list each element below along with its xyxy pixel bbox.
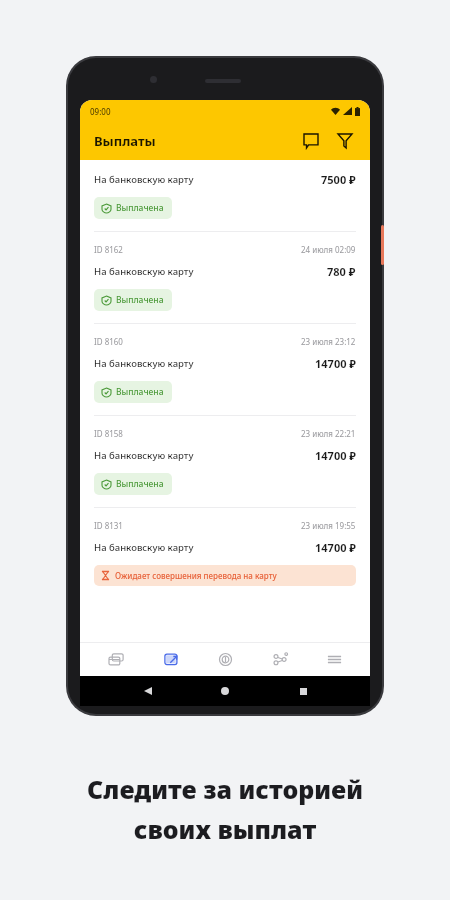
staticText: 14700 ₽ (315, 356, 356, 371)
staticText: 23 июля 22:21 (301, 428, 356, 439)
staticText: ID 8160 (94, 336, 123, 347)
staticText: 24 июля 02:09 (301, 244, 356, 255)
button[interactable]: Payouts (151, 642, 191, 676)
button[interactable]: Support (205, 642, 245, 676)
button[interactable]: Выплачена (94, 473, 172, 495)
button[interactable]: ID 8158 (80, 416, 370, 507)
button[interactable]: Back (138, 681, 158, 701)
button[interactable]: Выплачена (94, 289, 172, 311)
staticText: Следите за историей (0, 772, 450, 806)
staticText: 7500 ₽ (321, 172, 356, 187)
staticText: своих выплат (0, 812, 450, 846)
staticText: Выплачена (116, 202, 164, 214)
staticText: 14700 ₽ (315, 540, 356, 555)
staticText: 780 ₽ (327, 264, 356, 279)
button[interactable]: Home (215, 681, 235, 701)
staticText: На банковскую карту (94, 265, 194, 278)
button[interactable]: Referral (260, 642, 300, 676)
staticText: Выплачена (116, 386, 164, 398)
staticText: На банковскую карту (94, 173, 194, 186)
button[interactable]: ID 8131 (80, 508, 370, 598)
button[interactable]: Orders (96, 642, 136, 676)
button[interactable]: На банковскую карту (80, 160, 370, 231)
button[interactable]: Ожидает совершения перевода на карту (94, 565, 356, 586)
button[interactable]: ID 8162 (80, 232, 370, 323)
staticText: Выплаты (94, 132, 156, 150)
staticText: Ожидает совершения перевода на карту (115, 570, 277, 581)
staticText: 14700 ₽ (315, 448, 356, 463)
button[interactable]: Menu (314, 642, 354, 676)
button[interactable]: Chat (298, 128, 324, 154)
staticText: На банковскую карту (94, 357, 194, 370)
staticText: На банковскую карту (94, 541, 194, 554)
staticText: Выплачена (116, 294, 164, 306)
staticText: На банковскую карту (94, 449, 194, 462)
staticText: ID 8158 (94, 428, 123, 439)
staticText: ID 8162 (94, 244, 123, 255)
staticText: Выплачена (116, 478, 164, 490)
button[interactable]: ID 8160 (80, 324, 370, 415)
staticText: 23 июля 19:55 (301, 520, 356, 531)
staticText: 23 июля 23:12 (301, 336, 356, 347)
button[interactable]: Recents (293, 681, 313, 701)
button[interactable]: Filter (332, 128, 358, 154)
button[interactable]: Выплачена (94, 197, 172, 219)
staticText: ID 8131 (94, 520, 123, 531)
button[interactable]: Выплачена (94, 381, 172, 403)
staticText: 09:00 (90, 106, 111, 117)
